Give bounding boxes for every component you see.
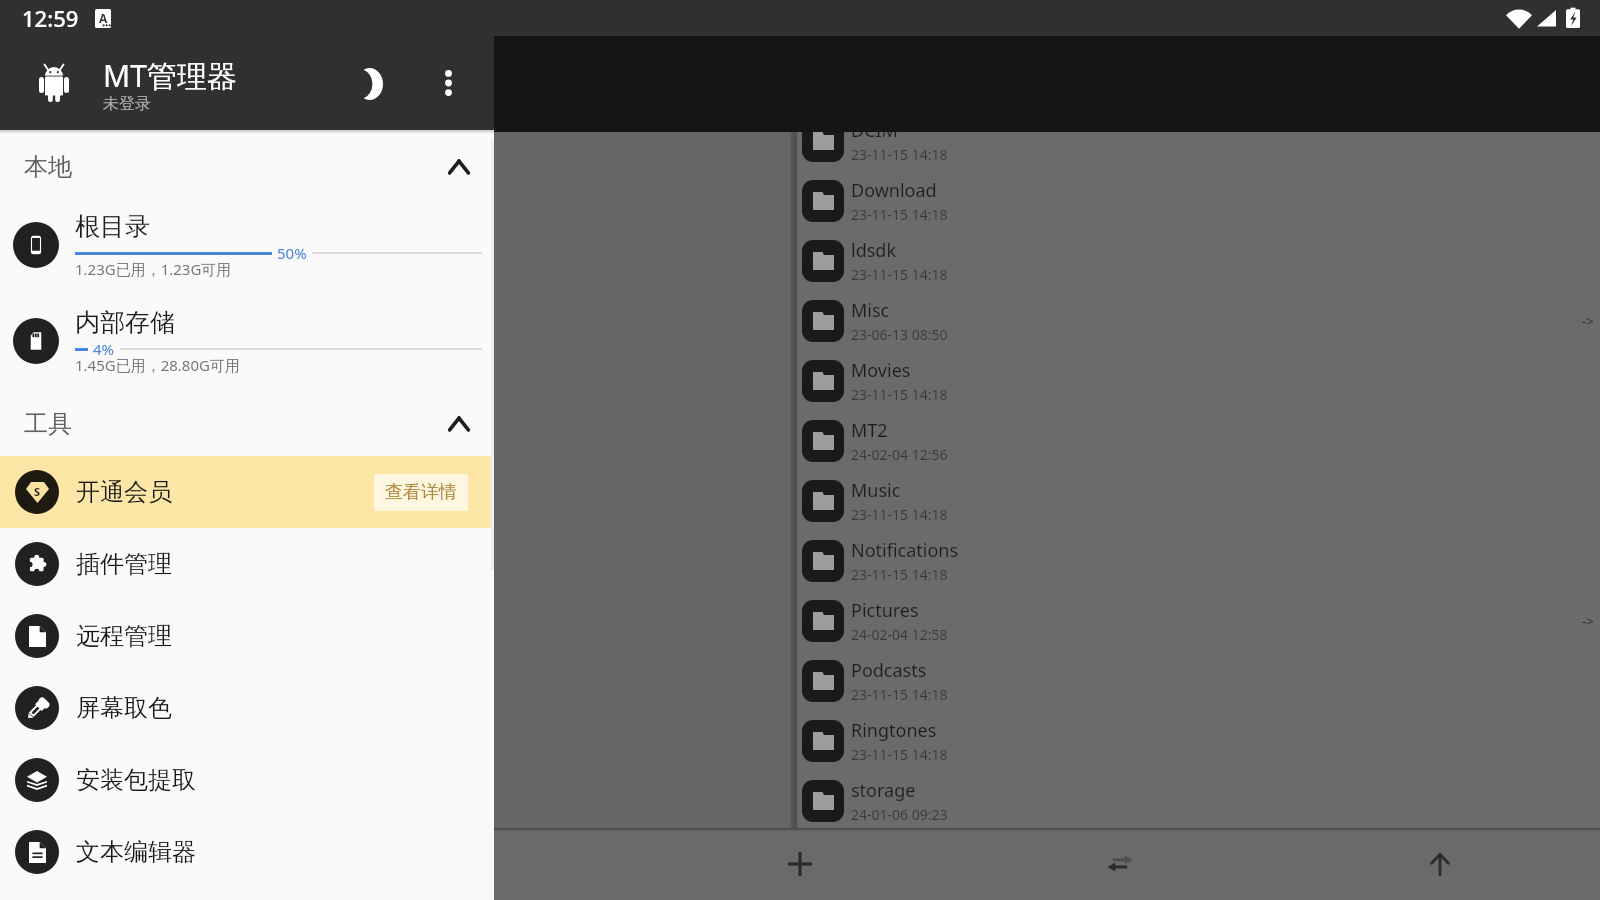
staticText: 根目录 xyxy=(75,211,150,242)
staticText: Pictures xyxy=(851,598,919,623)
button[interactable]: 工具 xyxy=(0,392,494,456)
staticText: 插件管理 xyxy=(76,549,172,579)
button[interactable]: Night mode xyxy=(348,68,386,100)
staticText: 23-11-15 14:18 xyxy=(851,385,948,404)
staticText: 屏幕取色 xyxy=(76,693,172,723)
staticText: 本地 xyxy=(24,152,72,182)
button[interactable]: 查看详情 xyxy=(374,474,468,511)
staticText: 23-11-15 14:18 xyxy=(851,685,948,704)
staticText: 安装包提取 xyxy=(76,765,196,795)
staticText: 未登录 xyxy=(103,94,151,114)
button[interactable]: 本地 xyxy=(0,134,494,200)
staticText: 23-11-15 14:18 xyxy=(851,205,948,224)
staticText: S xyxy=(34,484,41,499)
button[interactable]: 内部存储 xyxy=(0,296,494,392)
button[interactable]: Podcasts xyxy=(797,651,1600,711)
staticText: 1.45G已用，28.80G可用 xyxy=(75,355,240,375)
staticText: 文本编辑器 xyxy=(76,837,196,867)
button[interactable]: Switch panes xyxy=(960,828,1280,900)
button[interactable]: Notifications xyxy=(797,531,1600,591)
button[interactable]: Misc xyxy=(797,291,1600,351)
staticText: 50% xyxy=(277,243,307,263)
staticText: 24-02-04 12:56 xyxy=(851,445,948,464)
staticText: Misc xyxy=(851,298,890,323)
staticText: 23-06-13 08:50 xyxy=(851,325,948,344)
button[interactable]: More options xyxy=(425,60,471,106)
staticText: 工具 xyxy=(24,409,72,439)
staticText: -> xyxy=(1582,312,1594,330)
button[interactable]: New xyxy=(640,828,960,900)
staticText: 12:59 xyxy=(22,3,79,33)
staticText: Notifications xyxy=(851,538,959,563)
staticText: 远程管理 xyxy=(76,621,172,651)
staticText: MT管理器 xyxy=(103,55,237,96)
staticText: 23-11-15 14:18 xyxy=(851,265,948,284)
button[interactable]: 根目录 xyxy=(0,200,494,296)
button[interactable]: Download xyxy=(797,171,1600,231)
staticText: 23-11-15 14:18 xyxy=(851,745,948,764)
button[interactable]: 屏幕取色 xyxy=(0,672,494,744)
button[interactable]: S xyxy=(0,456,494,528)
staticText: 开通会员 xyxy=(76,477,172,507)
staticText: 23-11-15 14:18 xyxy=(851,145,948,164)
button[interactable]: storage xyxy=(797,771,1600,828)
staticText: Ringtones xyxy=(851,718,937,743)
button[interactable]: 文本编辑器 xyxy=(0,816,494,888)
staticText: 查看详情 xyxy=(385,481,457,504)
staticText: 4% xyxy=(93,339,115,359)
staticText: 1.23G已用，1.23G可用 xyxy=(75,259,232,279)
button[interactable]: Up one level xyxy=(1280,828,1600,900)
button[interactable]: Ringtones xyxy=(797,711,1600,771)
button[interactable]: 远程管理 xyxy=(0,600,494,672)
staticText: A xyxy=(99,10,108,26)
staticText: ldsdk xyxy=(851,238,897,263)
staticText: Podcasts xyxy=(851,658,927,683)
button[interactable]: ldsdk xyxy=(797,231,1600,291)
staticText: 24-02-04 12:58 xyxy=(851,625,948,644)
button[interactable]: 插件管理 xyxy=(0,528,494,600)
staticText: 24-01-06 09:23 xyxy=(851,805,948,824)
staticText: storage xyxy=(851,778,916,803)
staticText: 内部存储 xyxy=(75,307,175,338)
button[interactable]: DCIM xyxy=(797,132,1600,171)
button[interactable]: Music xyxy=(797,471,1600,531)
staticText: 23-11-15 14:18 xyxy=(851,505,948,524)
button[interactable]: 安装包提取 xyxy=(0,744,494,816)
staticText: -> xyxy=(1582,612,1594,630)
button[interactable]: Movies xyxy=(797,351,1600,411)
staticText: 23-11-15 14:18 xyxy=(851,565,948,584)
staticText: Download xyxy=(851,178,937,203)
button[interactable]: Pictures xyxy=(797,591,1600,651)
button[interactable]: MT2 xyxy=(797,411,1600,471)
staticText: DCIM xyxy=(851,132,898,143)
staticText: Movies xyxy=(851,358,911,383)
staticText: MT2 xyxy=(851,418,888,443)
staticText: Music xyxy=(851,478,901,503)
